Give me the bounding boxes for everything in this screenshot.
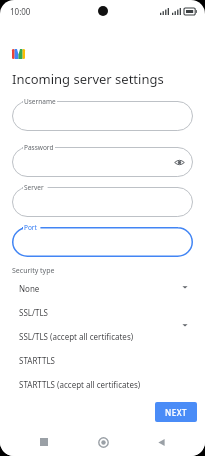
button[interactable]: SSL/TLS (accept all certificates) (6, 324, 178, 348)
staticText: Password (24, 143, 54, 152)
button[interactable]: Back (147, 428, 175, 456)
button[interactable]: Password (12, 147, 193, 177)
button[interactable]: Home (89, 428, 117, 456)
staticText: Incoming server settings (12, 70, 164, 88)
staticText: None (19, 283, 40, 294)
button[interactable]: None (6, 276, 178, 300)
button[interactable]: NEXT (155, 402, 197, 422)
staticText: Username (24, 97, 56, 106)
staticText: Port (24, 223, 37, 232)
button[interactable]: Port (12, 227, 193, 257)
button[interactable]: STARTTLS (6, 348, 178, 372)
staticText: SSL/TLS (accept all certificates) (19, 331, 134, 342)
button[interactable]: Recent apps (30, 428, 58, 456)
button[interactable]: Show password (173, 156, 185, 168)
staticText: STARTTLS (19, 355, 56, 366)
staticText: STARTTLS (accept all certificates) (19, 379, 141, 390)
staticText: Server (24, 183, 44, 192)
staticText: SSL/TLS (19, 307, 48, 318)
button[interactable]: SSL/TLS (6, 300, 178, 324)
button[interactable]: Server (12, 187, 193, 217)
button[interactable]: Open dropdown (181, 283, 189, 291)
button[interactable]: STARTTLS (accept all certificates) (6, 372, 178, 396)
staticText: NEXT (165, 407, 188, 418)
button[interactable]: Open dropdown (181, 321, 189, 329)
staticText: 10:00 (10, 6, 31, 17)
button[interactable]: Username (12, 101, 193, 131)
staticText: Security type (12, 266, 55, 276)
